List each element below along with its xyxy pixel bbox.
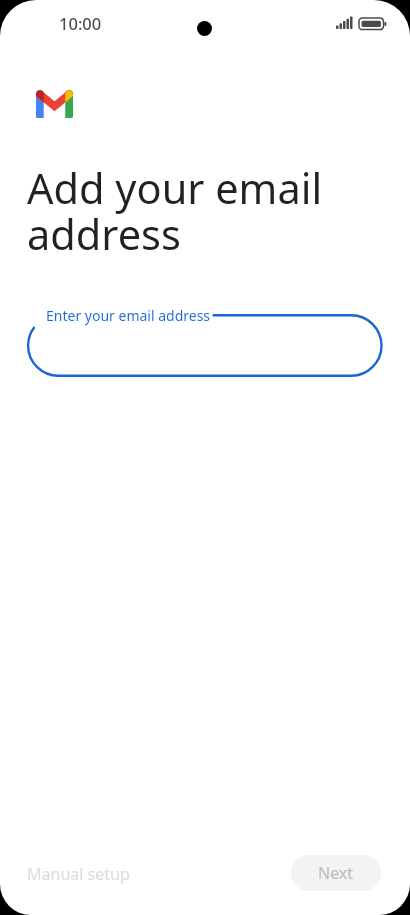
staticText: 10:00 xyxy=(59,12,102,34)
button[interactable]: Manual setup xyxy=(16,856,141,892)
button[interactable]: Next xyxy=(291,855,381,891)
staticText: Next xyxy=(318,862,354,884)
staticText: Add your email address xyxy=(27,160,357,263)
button[interactable]: Email address input xyxy=(26,313,384,378)
staticText: Enter your email address xyxy=(46,306,211,325)
staticText: Manual setup xyxy=(27,863,130,885)
